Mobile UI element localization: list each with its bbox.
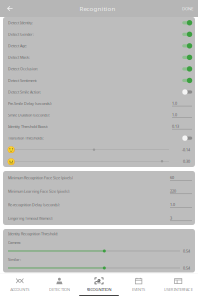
- button[interactable]: Pre-Smile Delay (seconds):: [3, 98, 195, 109]
- staticText: 😐: [6, 157, 14, 165]
- button[interactable]: EVENTS: [119, 273, 158, 296]
- button[interactable]: Detect Smile Action:: [3, 86, 195, 98]
- staticText: -0.14: [182, 147, 190, 152]
- button[interactable]: Transition Thresholds:: [3, 132, 195, 144]
- staticText: Re-recognition Delay (seconds):: [8, 202, 60, 207]
- staticText: 1.0: [172, 112, 177, 117]
- button[interactable]: Re-recognition Delay (seconds):: [3, 198, 195, 211]
- staticText: Lingering Timeout (frames):: [8, 216, 53, 221]
- staticText: Camera:: [8, 240, 21, 245]
- staticText: Detect Smile Action:: [8, 89, 41, 95]
- button[interactable]: Minimum Recognition Face Size (pixels): [3, 171, 195, 184]
- staticText: 🙂: [6, 146, 14, 153]
- staticText: Recognition: [79, 4, 115, 13]
- staticText: Minimum Learning Face Size (pixels):: [8, 189, 70, 194]
- staticText: 220: [170, 188, 176, 194]
- staticText: DETECTION: [49, 287, 70, 292]
- staticText: 3: [170, 215, 172, 221]
- button[interactable]: Smile Duration (seconds):: [3, 109, 195, 121]
- button[interactable]: USER INTERFACE: [158, 273, 198, 296]
- staticText: DONE: [182, 6, 193, 11]
- staticText: EVENTS: [132, 287, 145, 292]
- staticText: Identity Threshold Boost:: [8, 124, 48, 129]
- button[interactable]: Minimum Learning Face Size (pixels):: [3, 184, 195, 198]
- staticText: Similar:: [8, 257, 21, 262]
- button[interactable]: Detect Age:: [3, 40, 195, 52]
- staticText: Pre-Smile Delay (seconds):: [8, 101, 52, 106]
- staticText: Detect Mask:: [8, 55, 30, 60]
- button[interactable]: RECOGNITION: [79, 273, 119, 296]
- staticText: Detect Occlusion:: [8, 66, 38, 71]
- button[interactable]: Detect Gender:: [3, 28, 195, 40]
- staticText: 1.0: [172, 101, 177, 106]
- button[interactable]: DONE: [177, 0, 198, 17]
- staticText: 0.54: [183, 265, 190, 271]
- staticText: Transition Thresholds:: [8, 136, 44, 141]
- staticText: Identity Recognition Threshold:: [8, 231, 58, 236]
- staticText: 60: [170, 175, 174, 180]
- button[interactable]: Detect Sentiment:: [3, 75, 195, 86]
- button[interactable]: DETECTION: [40, 273, 79, 296]
- staticText: Minimum Recognition Face Size (pixels): [8, 175, 73, 180]
- button[interactable]: Detect Identity:: [3, 17, 195, 28]
- staticText: Detect Identity:: [8, 20, 33, 25]
- button[interactable]: Lingering Timeout (frames):: [3, 211, 195, 225]
- staticText: Smile Duration (seconds):: [8, 112, 50, 118]
- button[interactable]: ACCOUNTS: [0, 273, 40, 296]
- staticText: Detect Age:: [8, 43, 27, 48]
- staticText: 1.0: [170, 202, 175, 207]
- staticText: 0.13: [172, 124, 179, 129]
- button[interactable]: Detect Occlusion:: [3, 63, 195, 75]
- button[interactable]: Detect Mask:: [3, 52, 195, 63]
- button[interactable]: Identity Threshold Boost:: [3, 121, 195, 132]
- staticText: ACCOUNTS: [10, 287, 29, 292]
- staticText: 0.30: [183, 159, 190, 164]
- button[interactable]: Back: [0, 0, 18, 17]
- staticText: USER INTERFACE: [164, 287, 193, 292]
- staticText: Detect Gender:: [8, 32, 34, 37]
- staticText: 0.54: [183, 248, 190, 254]
- staticText: Detect Sentiment:: [8, 78, 37, 83]
- staticText: RECOGNITION: [86, 287, 111, 292]
